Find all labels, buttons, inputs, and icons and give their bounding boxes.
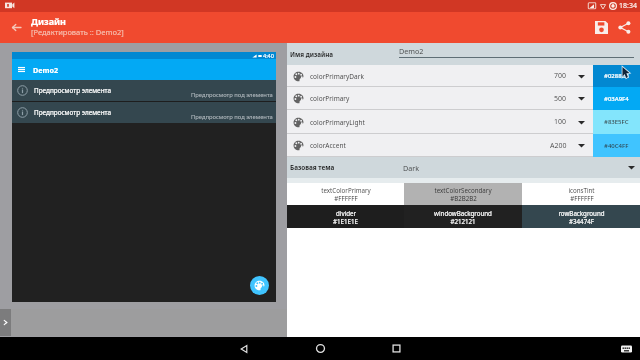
button[interactable]: rowBackground — [522, 205, 640, 228]
button[interactable]: colorPrimaryDark — [287, 65, 640, 87]
button[interactable]: Save — [590, 12, 612, 43]
staticText: rowBackground — [558, 209, 605, 217]
button[interactable]: divider — [287, 205, 404, 228]
staticText: 4:40 — [263, 52, 274, 59]
button[interactable]: Keyboard — [620, 343, 633, 354]
staticText: colorAccent — [310, 141, 346, 150]
button[interactable]: Recents — [358, 337, 434, 360]
button[interactable]: #83E5FC — [593, 110, 640, 134]
button[interactable]: #0288D1 — [593, 65, 640, 87]
staticText: colorPrimaryLight — [310, 118, 365, 127]
staticText: divider — [336, 209, 356, 217]
staticText: Дизайн — [31, 15, 67, 27]
staticText: colorPrimaryDark — [310, 72, 364, 81]
staticText: Имя дизайна — [290, 50, 334, 59]
staticText: #1E1E1E — [333, 217, 358, 225]
button[interactable]: Home — [282, 337, 358, 360]
staticText: textColorPrimary — [321, 186, 371, 194]
staticText: #FFFFFF — [334, 194, 358, 202]
staticText: #212121 — [450, 217, 476, 225]
button[interactable]: Expand panel — [0, 309, 11, 336]
button[interactable]: colorAccent — [287, 134, 640, 157]
staticText: #34474F — [569, 217, 594, 225]
button[interactable]: #03A9F4 — [593, 87, 640, 110]
staticText: Demo2 — [399, 46, 424, 56]
staticText: 700 — [554, 71, 567, 81]
staticText: #B2B2B2 — [450, 194, 477, 202]
staticText: Базовая тема — [290, 163, 335, 172]
staticText: 100 — [554, 117, 567, 127]
staticText: #0288D1 — [604, 72, 630, 80]
staticText: #83E5FC — [604, 118, 629, 126]
button[interactable]: textColorPrimary — [287, 183, 404, 205]
button[interactable]: Back — [206, 337, 282, 360]
button[interactable]: colorPrimary — [287, 87, 640, 110]
button[interactable]: Share — [612, 12, 636, 43]
staticText: #FFFFFF — [570, 194, 594, 202]
button[interactable]: Back — [0, 12, 31, 43]
staticText: #40C4FF — [604, 142, 629, 150]
staticText: Dark — [403, 163, 420, 173]
staticText: Demo2 — [33, 65, 59, 75]
button[interactable]: colorPrimaryLight — [287, 110, 640, 134]
button[interactable]: Demo2 — [399, 45, 634, 58]
staticText: windowBackground — [434, 209, 492, 217]
staticText: 18:34 — [619, 1, 637, 11]
staticText: textColorSecondary — [434, 186, 492, 194]
button[interactable]: iconsTint — [522, 183, 640, 205]
button[interactable]: Предпросмотр элемента — [12, 80, 276, 101]
staticText: 500 — [554, 94, 567, 104]
staticText: iconsTint — [568, 186, 595, 194]
staticText: Предпросмотр элемента — [34, 108, 112, 117]
staticText: colorPrimary — [310, 94, 350, 103]
button[interactable]: Предпросмотр элемента — [12, 102, 276, 123]
button[interactable]: Базовая тема — [287, 157, 640, 178]
button[interactable]: windowBackground — [404, 205, 522, 228]
staticText: [Редактировать :: Demo2] — [31, 27, 124, 37]
staticText: A200 — [550, 141, 567, 151]
button[interactable]: #40C4FF — [593, 134, 640, 157]
staticText: Предпросмотр под элемента — [191, 113, 273, 121]
staticText: Предпросмотр под элемента — [191, 91, 273, 99]
staticText: #03A9F4 — [604, 95, 629, 103]
button[interactable]: Choose palette — [250, 276, 269, 295]
staticText: Предпросмотр элемента — [34, 86, 112, 95]
button[interactable]: textColorSecondary — [404, 183, 522, 205]
